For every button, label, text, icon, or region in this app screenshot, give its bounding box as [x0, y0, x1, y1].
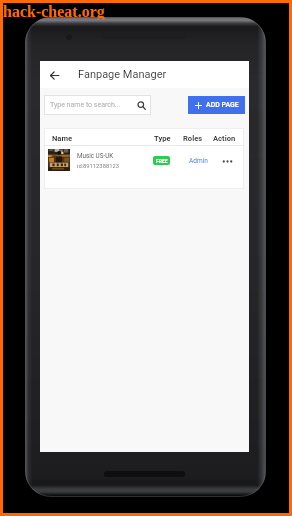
staticText: hack-cheat.org [3, 3, 105, 20]
staticText: Roles [183, 134, 203, 143]
staticText: Music US-UK [77, 152, 114, 159]
staticText: Action [213, 134, 236, 143]
button[interactable]: Back [46, 67, 62, 83]
button[interactable]: More options [219, 153, 235, 169]
staticText: FREE [156, 158, 168, 164]
staticText: Fanpage Manager [78, 68, 167, 81]
button[interactable]: ADD PAGE [188, 96, 245, 114]
staticText: Type name to search... [50, 101, 121, 109]
staticText: Name [52, 134, 73, 143]
button[interactable] [44, 146, 244, 188]
staticText: id:89112388123 [77, 163, 119, 170]
button[interactable]: Type name to search... [44, 95, 151, 115]
staticText: ADD PAGE [206, 101, 239, 109]
staticText: Admin [189, 157, 208, 165]
staticText: Type [154, 134, 171, 143]
